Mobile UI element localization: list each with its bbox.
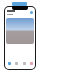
button[interactable]: Home bbox=[6, 60, 12, 66]
button[interactable] bbox=[6, 18, 34, 44]
button[interactable]: Search bbox=[13, 60, 19, 66]
button[interactable]: Profile bbox=[28, 60, 34, 66]
button[interactable]: Profile bbox=[30, 11, 33, 14]
button[interactable]: Saved bbox=[21, 60, 27, 66]
